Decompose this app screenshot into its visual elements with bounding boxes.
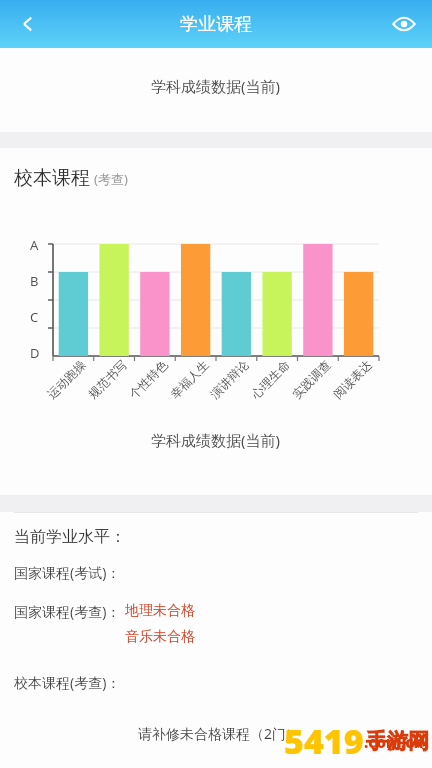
- staticText: 手游网: [366, 728, 429, 754]
- staticText: 规范书写: [85, 357, 129, 402]
- staticText: 个性特色: [126, 357, 170, 402]
- staticText: 音乐未合格: [125, 628, 195, 646]
- staticText: 5419: [284, 718, 364, 758]
- staticText: 校本课程: [14, 166, 90, 190]
- staticText: 请补修未合格课程（2门）: [138, 724, 301, 743]
- staticText: 学科成绩数据(当前): [151, 76, 281, 96]
- staticText: A: [30, 236, 39, 252]
- staticText: 运动跑操: [44, 357, 88, 402]
- staticText: 地理未合格: [125, 602, 195, 620]
- staticText: 当前学业水平：: [14, 527, 126, 547]
- staticText: 实践调查: [289, 357, 333, 402]
- staticText: 心理生命: [248, 357, 292, 402]
- staticText: .com.cn: [364, 732, 424, 752]
- staticText: (考查): [94, 170, 128, 188]
- staticText: 阅读表达: [330, 357, 374, 402]
- staticText: 学业课程: [180, 13, 252, 36]
- staticText: 校本课程(考查)：: [14, 673, 121, 692]
- button[interactable]: Preview: [382, 2, 426, 46]
- staticText: 演讲辩论: [207, 357, 251, 402]
- staticText: C: [30, 308, 39, 324]
- staticText: D: [30, 344, 40, 360]
- staticText: 国家课程(考查)：: [14, 602, 121, 621]
- staticText: B: [30, 272, 39, 288]
- staticText: 国家课程(考试)：: [14, 563, 121, 582]
- staticText: 幸福人生: [167, 357, 211, 402]
- staticText: 学科成绩数据(当前): [151, 430, 281, 450]
- button[interactable]: Back: [6, 2, 50, 46]
